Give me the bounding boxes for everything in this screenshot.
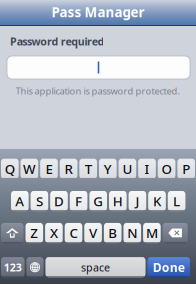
staticText: N bbox=[127, 224, 137, 242]
button[interactable]: space bbox=[45, 257, 145, 277]
button[interactable]: K bbox=[148, 191, 166, 211]
button[interactable]: D bbox=[50, 191, 68, 211]
button[interactable]: Y bbox=[99, 158, 117, 179]
button[interactable]: M bbox=[143, 223, 161, 243]
button[interactable]: A bbox=[11, 191, 29, 211]
staticText: P bbox=[182, 160, 190, 178]
staticText: M bbox=[146, 224, 158, 242]
button[interactable]: J bbox=[129, 191, 146, 211]
staticText: S bbox=[36, 192, 43, 210]
button[interactable]: T bbox=[79, 158, 97, 179]
staticText: Pass Manager bbox=[51, 3, 144, 21]
staticText: G bbox=[93, 192, 103, 210]
button[interactable]: W bbox=[21, 158, 38, 179]
staticText: Y bbox=[104, 160, 112, 178]
button[interactable]: F bbox=[70, 191, 87, 211]
button[interactable]: Next keyboard bbox=[26, 257, 43, 277]
staticText: W bbox=[23, 160, 36, 178]
button[interactable]: Shift bbox=[1, 223, 23, 243]
button[interactable]: C bbox=[65, 223, 82, 243]
staticText: E bbox=[45, 160, 52, 178]
button[interactable]: N bbox=[123, 223, 141, 243]
button[interactable]: U bbox=[119, 158, 136, 179]
staticText: Password required bbox=[10, 34, 104, 49]
button[interactable]: Delete bbox=[163, 223, 188, 243]
button[interactable]: E bbox=[40, 158, 58, 179]
staticText: space bbox=[81, 260, 110, 274]
staticText: V bbox=[89, 224, 97, 242]
button[interactable]: S bbox=[31, 191, 48, 211]
button[interactable]: B bbox=[104, 223, 121, 243]
button[interactable]: X bbox=[45, 223, 63, 243]
staticText: X bbox=[50, 224, 58, 242]
staticText: O bbox=[162, 160, 172, 178]
staticText: R bbox=[65, 160, 73, 178]
staticText: Done bbox=[153, 259, 185, 275]
button[interactable]: Q bbox=[1, 158, 19, 179]
button[interactable]: L bbox=[168, 191, 185, 211]
button[interactable]: I bbox=[138, 158, 156, 179]
staticText: This application is password protected. bbox=[15, 85, 180, 97]
staticText: B bbox=[108, 224, 117, 242]
button[interactable]: Done bbox=[147, 257, 190, 277]
staticText: D bbox=[54, 192, 64, 210]
button[interactable]: Z bbox=[25, 223, 43, 243]
button[interactable]: P bbox=[177, 158, 195, 179]
button[interactable]: Password field bbox=[7, 56, 190, 79]
staticText: Z bbox=[30, 224, 38, 242]
staticText: J bbox=[135, 192, 139, 210]
button[interactable]: O bbox=[158, 158, 175, 179]
staticText: C bbox=[69, 224, 77, 242]
button[interactable]: V bbox=[84, 223, 102, 243]
button[interactable]: H bbox=[109, 191, 127, 211]
staticText: A bbox=[15, 192, 24, 210]
button[interactable]: 123 bbox=[1, 257, 24, 277]
staticText: H bbox=[113, 192, 123, 210]
button[interactable]: Pass Manager bbox=[0, 0, 196, 24]
staticText: Q bbox=[5, 160, 15, 178]
staticText: I bbox=[144, 160, 149, 178]
staticText: 123 bbox=[4, 260, 22, 274]
button[interactable]: R bbox=[60, 158, 77, 179]
staticText: U bbox=[122, 160, 132, 178]
staticText: T bbox=[85, 160, 92, 178]
staticText: K bbox=[153, 192, 161, 210]
button[interactable]: G bbox=[89, 191, 107, 211]
staticText: F bbox=[75, 192, 82, 210]
staticText: L bbox=[173, 192, 180, 210]
